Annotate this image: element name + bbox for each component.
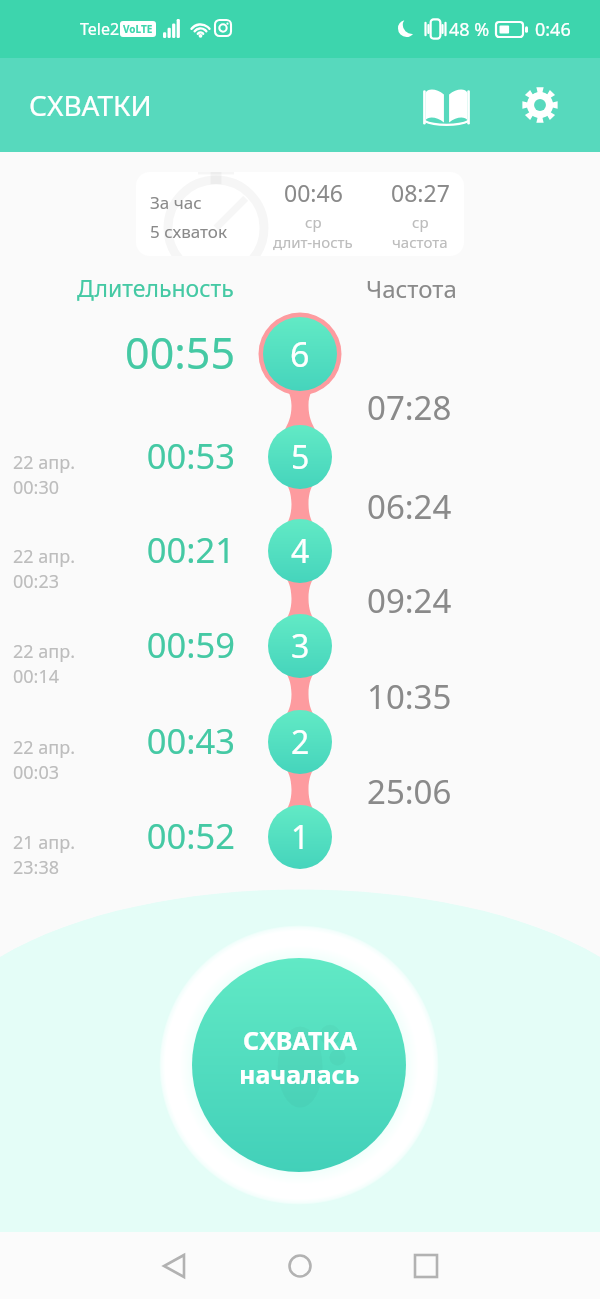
button[interactable]: Guide: [417, 76, 475, 134]
staticText: Длительность: [77, 272, 234, 303]
staticText: 0:46: [535, 17, 571, 42]
staticText: VoLTE: [123, 22, 153, 36]
button[interactable]: За час: [136, 172, 464, 256]
staticText: Частота: [366, 272, 457, 305]
staticText: 00:52: [0, 812, 235, 859]
staticText: 00:03: [13, 760, 60, 785]
button[interactable]: СХВАТКА: [159, 925, 439, 1205]
staticText: 25:06: [367, 769, 452, 814]
staticText: 6: [290, 331, 310, 377]
staticText: 48 %: [449, 17, 490, 42]
staticText: 00:55: [0, 323, 235, 382]
staticText: 5: [291, 435, 310, 479]
staticText: 22 апр.: [13, 639, 75, 664]
staticText: 22 апр.: [13, 450, 75, 475]
staticText: СХВАТКИ: [29, 86, 152, 124]
button[interactable]: Home: [265, 1232, 335, 1299]
staticText: 00:59: [0, 621, 235, 668]
button[interactable]: 3: [250, 596, 350, 696]
staticText: 5 схваток: [150, 220, 227, 243]
staticText: 00:21: [0, 526, 235, 573]
staticText: 2: [291, 720, 310, 764]
button[interactable]: 4: [250, 501, 350, 601]
staticText: 00:46: [284, 177, 343, 208]
button[interactable]: 6: [250, 304, 350, 404]
staticText: 10:35: [367, 674, 452, 719]
staticText: 00:23: [13, 569, 60, 594]
staticText: 22 апр.: [13, 544, 75, 569]
staticText: ср: [412, 212, 429, 232]
button[interactable]: Recents: [391, 1232, 461, 1299]
staticText: СХВАТКА: [243, 1023, 357, 1057]
staticText: 4: [291, 529, 310, 573]
staticText: 00:30: [13, 475, 60, 500]
staticText: За час: [150, 191, 202, 214]
staticText: 22 апр.: [13, 735, 75, 760]
button[interactable]: Settings: [511, 76, 569, 134]
staticText: частота: [392, 232, 448, 252]
staticText: Tele2: [80, 18, 120, 40]
staticText: 3: [291, 624, 310, 668]
staticText: 08:27: [391, 177, 450, 208]
button[interactable]: 2: [250, 692, 350, 792]
button[interactable]: 1: [250, 787, 350, 887]
staticText: 21 апр.: [13, 830, 75, 855]
staticText: ср: [305, 212, 322, 232]
staticText: 00:43: [0, 717, 235, 764]
button[interactable]: 5: [250, 407, 350, 507]
staticText: началась: [239, 1057, 360, 1091]
staticText: длит-ность: [273, 232, 353, 252]
staticText: 06:24: [367, 484, 452, 529]
staticText: 07:28: [367, 385, 452, 430]
staticText: 00:53: [0, 432, 235, 479]
staticText: 09:24: [367, 578, 452, 623]
button[interactable]: Back: [139, 1232, 209, 1299]
staticText: 00:14: [13, 664, 60, 689]
staticText: 1: [291, 815, 310, 859]
staticText: 23:38: [13, 855, 60, 880]
